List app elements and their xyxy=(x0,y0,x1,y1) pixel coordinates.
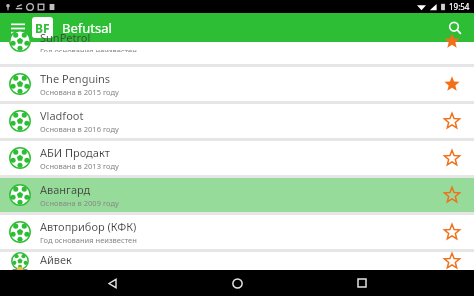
staticText: Год основания неизвестен xyxy=(40,46,137,52)
staticText: Авангард xyxy=(40,182,91,197)
button[interactable]: Open navigation drawer xyxy=(7,17,29,39)
button[interactable]: АБИ Продакт xyxy=(0,141,474,175)
button[interactable]: Автоприбор (КФК) xyxy=(0,215,474,249)
staticText: The Penguins xyxy=(40,71,111,86)
staticText: BF xyxy=(35,20,50,36)
button[interactable]: Recent apps xyxy=(349,270,375,296)
staticText: Год основания неизвестен xyxy=(40,235,137,245)
staticText: SunPetrol xyxy=(40,30,91,45)
staticText: Befutsal xyxy=(62,19,112,37)
button[interactable]: Add to favorites xyxy=(439,252,465,270)
staticText: Основана в 2013 году xyxy=(40,161,119,171)
staticText: Основана в 2016 году xyxy=(40,124,119,134)
button[interactable]: Home xyxy=(224,270,250,296)
staticText: Айвек xyxy=(40,252,72,267)
button[interactable]: Vladfoot xyxy=(0,104,474,138)
button[interactable]: Remove from favorites xyxy=(439,30,465,52)
button[interactable]: Add to favorites xyxy=(439,182,465,208)
staticText: Основана в 2015 году xyxy=(40,87,119,97)
staticText: 19:54 xyxy=(449,1,470,12)
button[interactable]: Авангард xyxy=(0,178,474,212)
staticText: Автоприбор (КФК) xyxy=(40,219,137,234)
button[interactable]: Add to favorites xyxy=(439,145,465,171)
button[interactable]: Add to favorites xyxy=(439,219,465,245)
button[interactable]: Айвек xyxy=(0,252,474,270)
staticText: Основана в 2009 году xyxy=(40,198,119,208)
button[interactable]: Add to favorites xyxy=(439,108,465,134)
staticText: Vladfoot xyxy=(40,108,84,123)
staticText: АБИ Продакт xyxy=(40,145,110,160)
button[interactable]: Remove from favorites xyxy=(439,71,465,97)
button[interactable]: The Penguins xyxy=(0,67,474,101)
button[interactable]: Search xyxy=(443,16,467,40)
button[interactable]: Back xyxy=(99,270,125,296)
